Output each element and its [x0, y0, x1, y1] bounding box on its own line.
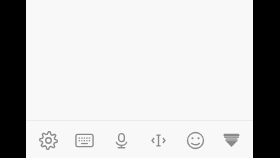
- button[interactable]: Move cursor: [140, 122, 176, 158]
- button[interactable]: Hide keyboard: [213, 122, 249, 158]
- button[interactable]: Emoji: [177, 122, 213, 158]
- button[interactable]: Keyboard: [66, 122, 102, 158]
- button[interactable]: Settings: [30, 122, 66, 158]
- button[interactable]: Voice input: [103, 122, 139, 158]
